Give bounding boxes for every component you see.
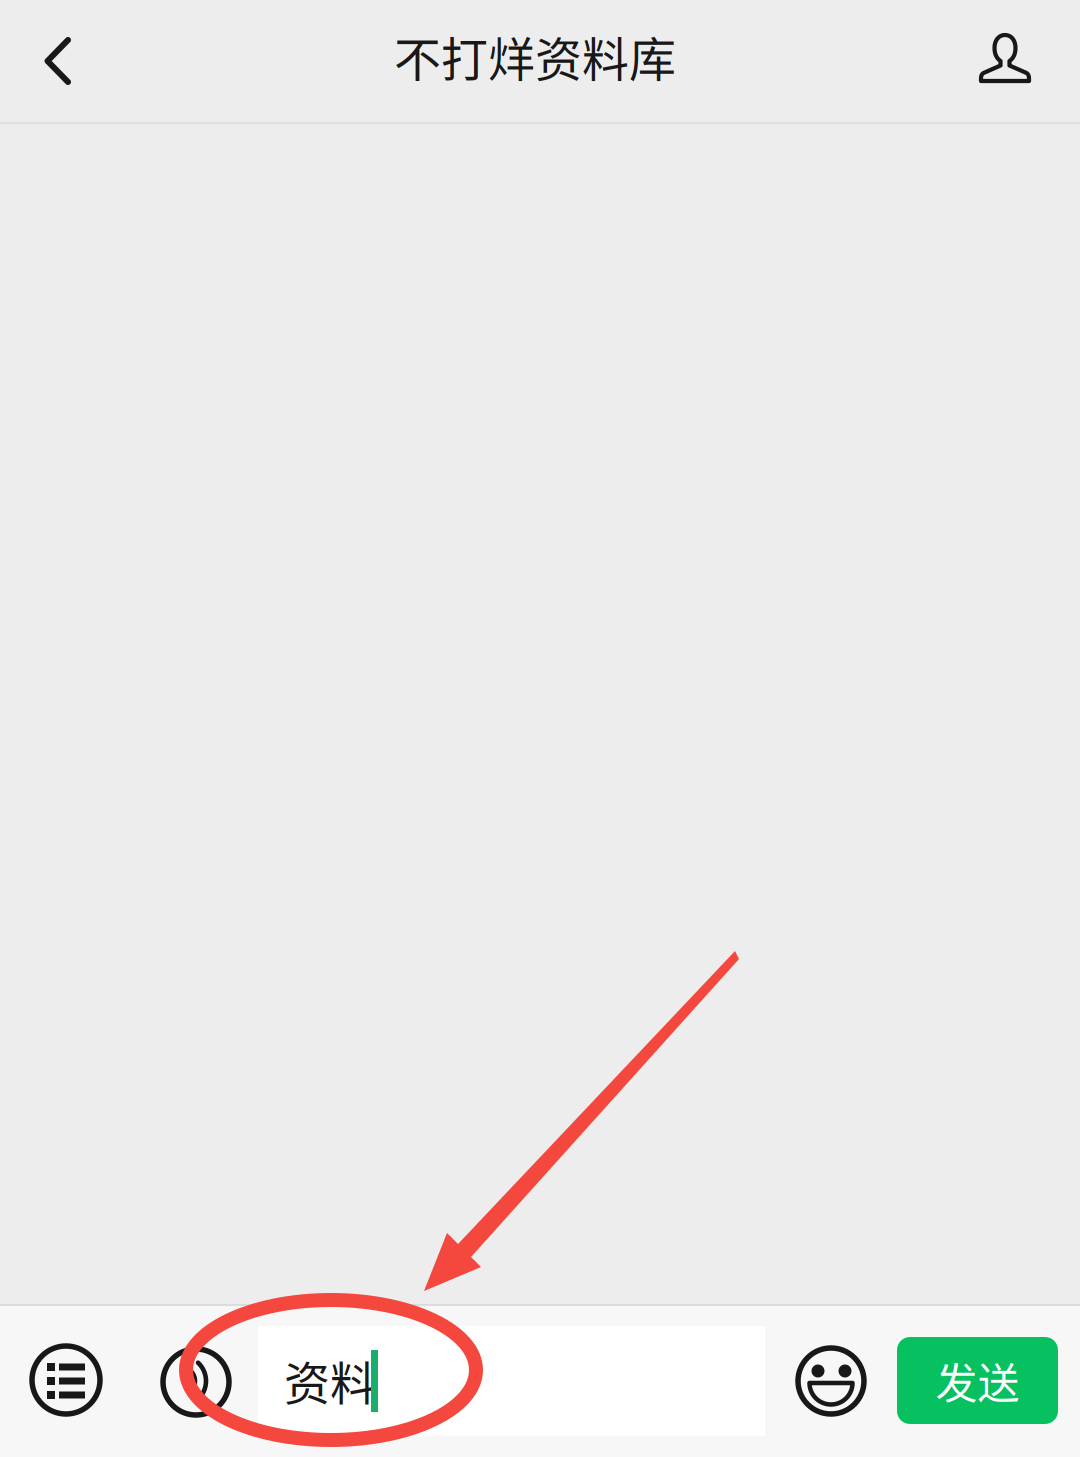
staticText: 不打烊资料库: [394, 22, 676, 90]
button[interactable]: More: [29, 1343, 103, 1417]
button[interactable]: 资料: [258, 1326, 765, 1436]
button[interactable]: Voice input: [160, 1346, 232, 1418]
staticText: 发送: [935, 1350, 1019, 1411]
staticText: 资料: [284, 1347, 376, 1413]
button[interactable]: Contact info: [955, 0, 1055, 119]
button[interactable]: Back: [12, 0, 104, 122]
button[interactable]: Emoji: [795, 1345, 867, 1417]
button[interactable]: 发送: [897, 1337, 1058, 1424]
